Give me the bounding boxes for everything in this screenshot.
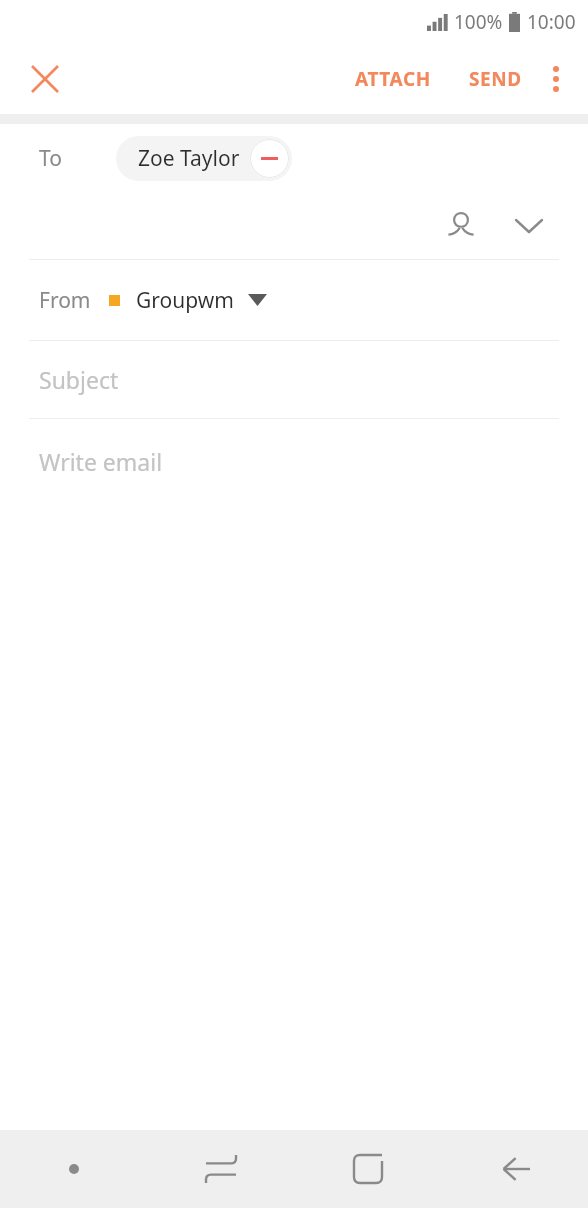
button[interactable]: SEND — [461, 56, 530, 102]
button[interactable]: Expand recipients — [505, 202, 553, 250]
staticText: Write email — [39, 446, 163, 477]
staticText: Groupwm — [136, 286, 234, 315]
staticText: To — [39, 144, 62, 173]
staticText: ATTACH — [355, 66, 431, 92]
staticText: Subject — [39, 364, 119, 395]
button[interactable]: From — [0, 260, 588, 340]
staticText: 100% — [454, 9, 503, 35]
staticText: From — [39, 286, 91, 315]
staticText: 10:00 — [527, 9, 576, 35]
button[interactable]: Remove Zoe Taylor — [250, 139, 289, 178]
button[interactable]: ATTACH — [347, 56, 439, 102]
staticText: SEND — [469, 66, 522, 92]
staticText: Zoe Taylor — [138, 144, 240, 173]
button[interactable]: Recents — [147, 1130, 294, 1208]
button[interactable]: Add from contacts — [437, 202, 485, 250]
button[interactable]: Zoe Taylor — [116, 136, 292, 181]
button[interactable]: Home — [294, 1130, 441, 1208]
button[interactable]: More options — [530, 53, 582, 105]
button[interactable]: Assistant — [0, 1130, 147, 1208]
button[interactable]: Close — [18, 52, 72, 106]
button[interactable]: Back — [441, 1130, 588, 1208]
button[interactable]: Subject — [0, 341, 588, 418]
